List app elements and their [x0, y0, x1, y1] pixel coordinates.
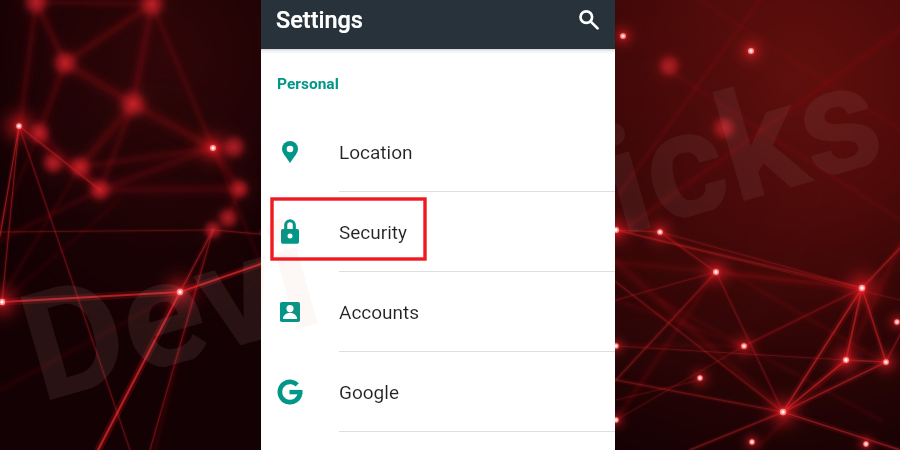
button[interactable]: Security [261, 192, 615, 272]
button[interactable]: Google [261, 352, 615, 432]
button[interactable]: Location [261, 112, 615, 192]
staticText: Settings [276, 6, 364, 34]
staticText: Accounts [339, 301, 420, 323]
staticText: DeviceTricks [2, 25, 890, 403]
staticText: Personal [277, 75, 339, 93]
staticText: Security [339, 221, 408, 243]
staticText: DeviceTricks [2, 170, 381, 403]
staticText: Google [339, 381, 399, 403]
button[interactable]: Search [563, 0, 609, 49]
button[interactable]: Accounts [261, 272, 615, 352]
staticText: Location [339, 141, 413, 163]
